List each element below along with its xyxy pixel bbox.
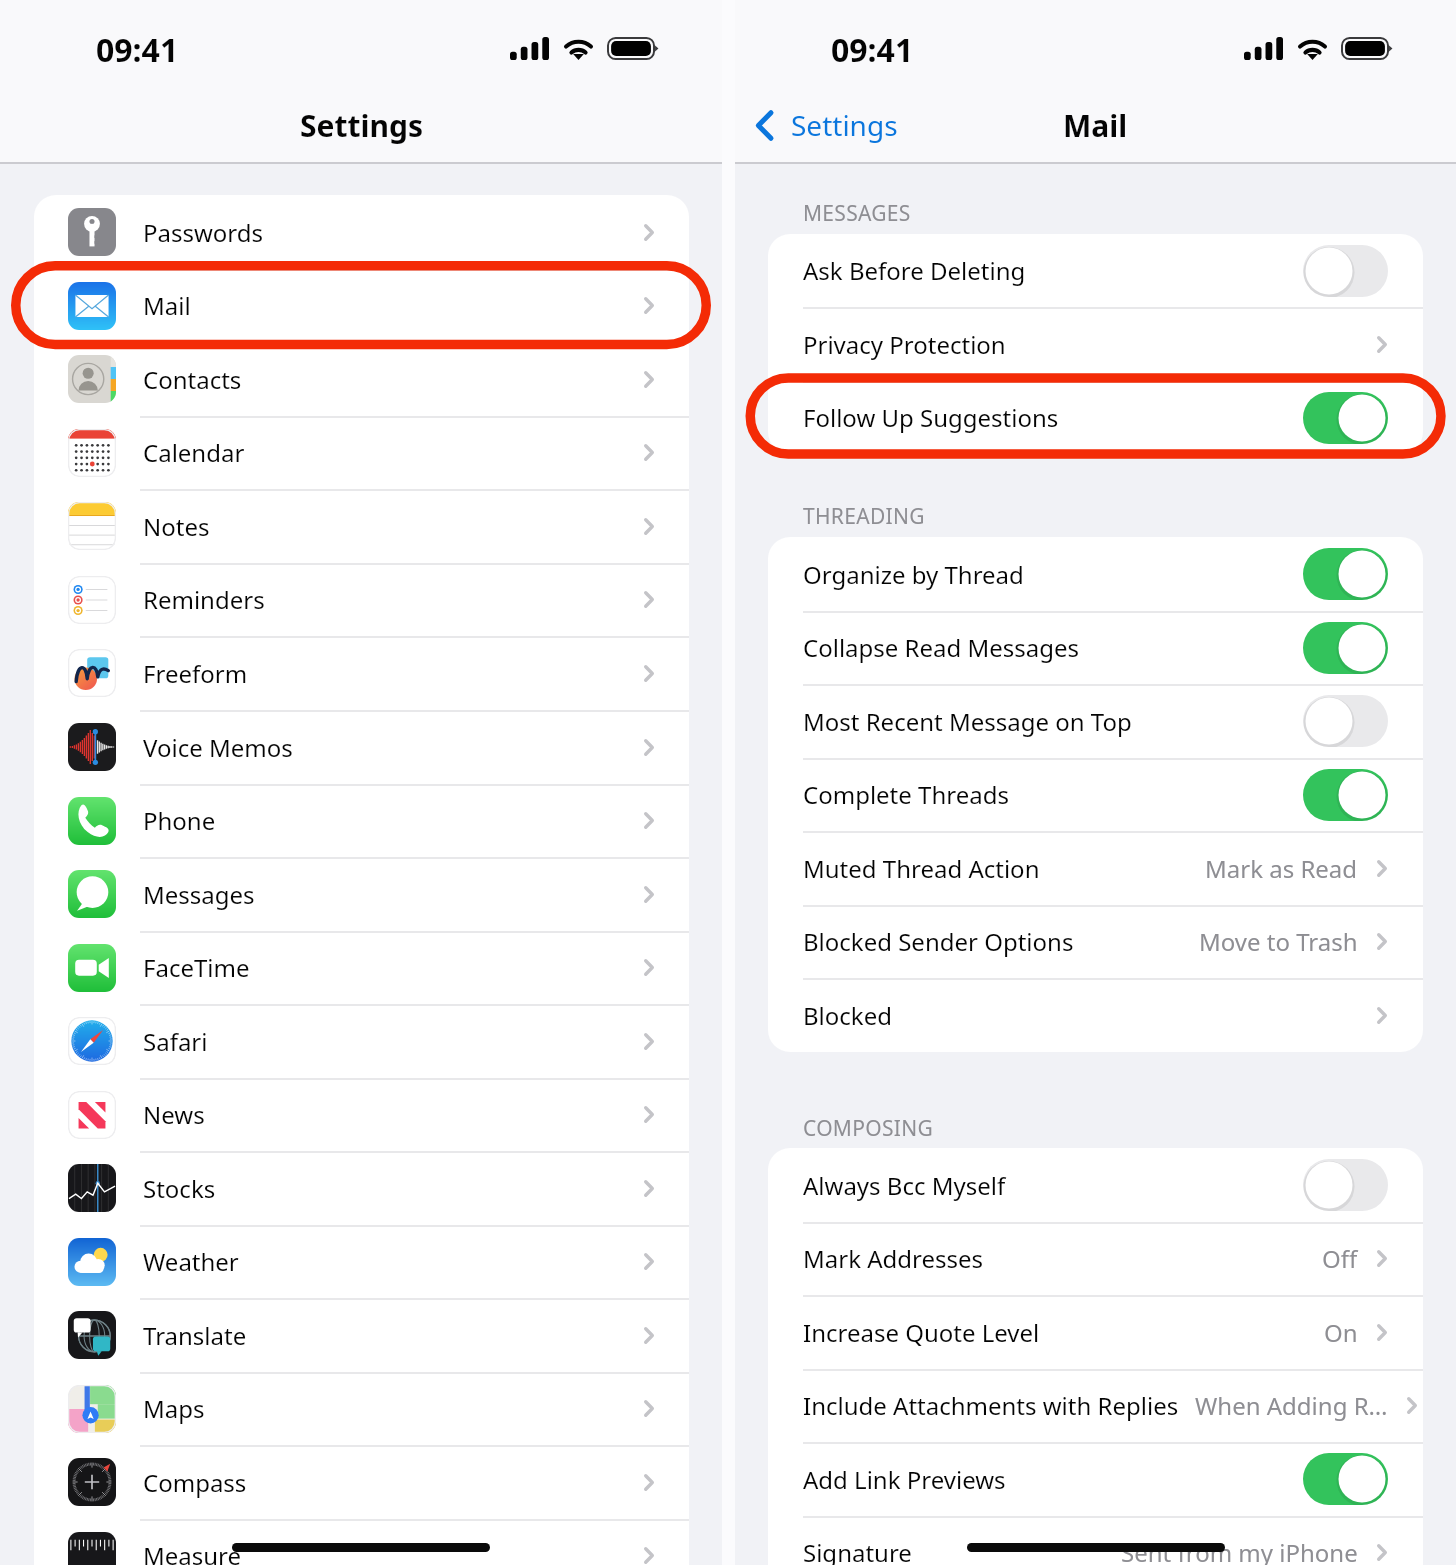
staticText: Translate bbox=[143, 1319, 644, 1352]
button[interactable]: Signature bbox=[768, 1516, 1423, 1565]
button[interactable]: Switch on bbox=[1303, 769, 1388, 821]
staticText: 09:41 bbox=[831, 28, 914, 72]
staticText: Measure bbox=[143, 1539, 644, 1565]
button[interactable]: Maps bbox=[34, 1372, 689, 1445]
button[interactable]: Switch off bbox=[1303, 695, 1388, 747]
button[interactable]: FaceTime bbox=[34, 931, 689, 1004]
button[interactable]: Safari bbox=[34, 1004, 689, 1078]
staticText: Blocked bbox=[803, 999, 892, 1032]
staticText: Messages bbox=[143, 878, 644, 911]
staticText: Sent from my iPhone bbox=[1121, 1536, 1358, 1565]
staticText: When Adding R… bbox=[1195, 1389, 1388, 1422]
button[interactable]: Privacy Protection bbox=[768, 307, 1423, 381]
button[interactable]: Voice Memos bbox=[34, 710, 689, 784]
staticText: Most Recent Message on Top bbox=[803, 705, 1303, 738]
staticText: Contacts bbox=[143, 363, 644, 396]
staticText: Add Link Previews bbox=[803, 1463, 1303, 1496]
staticText: Settings bbox=[300, 105, 423, 146]
staticText: Collapse Read Messages bbox=[803, 631, 1303, 664]
staticText: Stocks bbox=[143, 1172, 644, 1205]
button[interactable]: Follow Up Suggestions bbox=[768, 381, 1423, 454]
button[interactable]: Increase Quote Level bbox=[768, 1295, 1423, 1369]
button[interactable]: Messages bbox=[34, 857, 689, 931]
staticText: Include Attachments with Replies bbox=[803, 1389, 1179, 1422]
staticText: Freeform bbox=[143, 657, 644, 690]
button[interactable]: Reminders bbox=[34, 563, 689, 636]
staticText: Voice Memos bbox=[143, 731, 644, 764]
staticText: News bbox=[143, 1098, 644, 1131]
staticText: Reminders bbox=[143, 583, 644, 616]
button[interactable]: Switch on bbox=[1303, 1453, 1388, 1505]
button[interactable]: Back bbox=[756, 106, 898, 144]
staticText: MESSAGES bbox=[803, 199, 911, 228]
button[interactable]: Translate bbox=[34, 1298, 689, 1372]
button[interactable]: Switch on bbox=[1303, 622, 1388, 674]
button[interactable]: Add Link Previews bbox=[768, 1442, 1423, 1516]
staticText: Maps bbox=[143, 1392, 644, 1425]
staticText: Signature bbox=[803, 1536, 912, 1565]
staticText: Move to Trash bbox=[1199, 925, 1358, 958]
staticText: Passwords bbox=[143, 216, 644, 249]
button[interactable]: Weather bbox=[34, 1225, 689, 1298]
button[interactable]: Mark Addresses bbox=[768, 1222, 1423, 1295]
staticText: Settings bbox=[791, 106, 898, 144]
button[interactable]: Muted Thread Action bbox=[768, 831, 1423, 905]
staticText: Calendar bbox=[143, 436, 644, 469]
button[interactable]: Switch off bbox=[1303, 1159, 1388, 1211]
button[interactable]: Notes bbox=[34, 489, 689, 563]
button[interactable]: Phone bbox=[34, 784, 689, 857]
staticText: Notes bbox=[143, 510, 644, 543]
button[interactable]: Ask Before Deleting bbox=[768, 234, 1423, 307]
staticText: 09:41 bbox=[96, 28, 179, 72]
button[interactable]: News bbox=[34, 1078, 689, 1151]
staticText: Follow Up Suggestions bbox=[803, 401, 1303, 434]
other: Back bbox=[756, 111, 773, 140]
button[interactable]: Switch on bbox=[1303, 548, 1388, 600]
staticText: Mark as Read bbox=[1205, 852, 1358, 885]
button[interactable]: Mail bbox=[34, 269, 689, 342]
button[interactable]: Measure bbox=[34, 1519, 689, 1565]
staticText: COMPOSING bbox=[803, 1114, 934, 1143]
staticText: Blocked Sender Options bbox=[803, 925, 1074, 958]
staticText: Organize by Thread bbox=[803, 558, 1303, 591]
button[interactable]: Collapse Read Messages bbox=[768, 611, 1423, 684]
button[interactable]: Contacts bbox=[34, 342, 689, 416]
staticText: Increase Quote Level bbox=[803, 1316, 1040, 1349]
staticText: Phone bbox=[143, 804, 644, 837]
button[interactable]: Always Bcc Myself bbox=[768, 1148, 1423, 1222]
button[interactable]: Switch on bbox=[1303, 392, 1388, 444]
staticText: Mail bbox=[143, 289, 644, 322]
button[interactable]: Blocked Sender Options bbox=[768, 905, 1423, 978]
staticText: Off bbox=[1322, 1242, 1358, 1275]
button[interactable]: Most Recent Message on Top bbox=[768, 684, 1423, 758]
button[interactable]: Stocks bbox=[34, 1151, 689, 1225]
staticText: Ask Before Deleting bbox=[803, 254, 1303, 287]
staticText: Privacy Protection bbox=[803, 328, 1006, 361]
button[interactable]: Complete Threads bbox=[768, 758, 1423, 831]
staticText: THREADING bbox=[803, 502, 925, 531]
staticText: Compass bbox=[143, 1466, 644, 1499]
staticText: Safari bbox=[143, 1025, 644, 1058]
button[interactable]: Blocked bbox=[768, 978, 1423, 1052]
staticText: Complete Threads bbox=[803, 778, 1303, 811]
button[interactable]: Compass bbox=[34, 1445, 689, 1519]
staticText: FaceTime bbox=[143, 951, 644, 984]
staticText: Mark Addresses bbox=[803, 1242, 984, 1275]
staticText: Muted Thread Action bbox=[803, 852, 1040, 885]
button[interactable]: Include Attachments with Replies bbox=[768, 1369, 1423, 1442]
staticText: Always Bcc Myself bbox=[803, 1169, 1303, 1202]
button[interactable]: Organize by Thread bbox=[768, 537, 1423, 611]
staticText: Weather bbox=[143, 1245, 644, 1278]
button[interactable]: Passwords bbox=[34, 195, 689, 269]
button[interactable]: Freeform bbox=[34, 636, 689, 710]
button[interactable]: Switch off bbox=[1303, 245, 1388, 297]
staticText: On bbox=[1324, 1316, 1358, 1349]
staticText: Mail bbox=[1063, 105, 1128, 146]
button[interactable]: Calendar bbox=[34, 416, 689, 489]
